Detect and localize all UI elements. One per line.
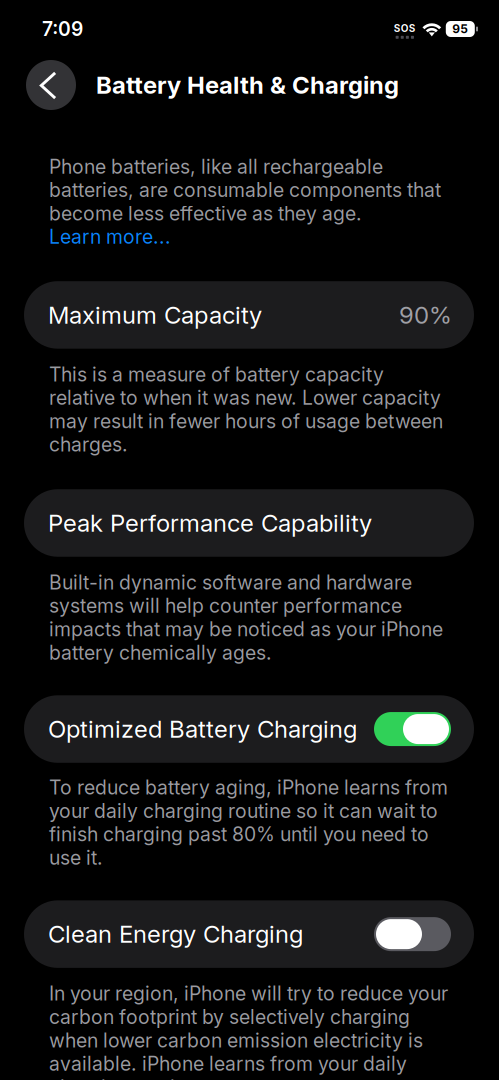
staticText: 90%: [399, 300, 452, 329]
staticText: 7:09: [42, 17, 83, 41]
staticText: To reduce battery aging, iPhone learns f…: [49, 776, 448, 869]
staticText: In your region, iPhone will try to reduc…: [49, 982, 448, 1080]
staticText: This is a measure of battery capacity re…: [49, 363, 443, 456]
button[interactable]: Back: [26, 60, 76, 110]
button[interactable]: Optimized Battery Charging: [24, 695, 474, 763]
staticText: Learn more...: [49, 225, 171, 248]
button[interactable]: Maximum Capacity: [24, 281, 474, 349]
staticText: Built-in dynamic software and hardware s…: [49, 571, 443, 664]
staticText: SOS: [394, 22, 416, 34]
staticText: Maximum Capacity: [48, 300, 262, 329]
staticText: Optimized Battery Charging: [48, 714, 357, 743]
staticText: Battery Health & Charging: [96, 70, 399, 99]
staticText: 95: [452, 22, 468, 36]
staticText: Phone batteries, like all rechargeable b…: [49, 155, 441, 225]
staticText: Peak Performance Capability: [48, 508, 372, 537]
staticText: Clean Energy Charging: [48, 920, 303, 949]
button[interactable]: Clean Energy Charging: [24, 900, 474, 968]
button[interactable]: Learn more...: [49, 225, 171, 248]
button[interactable]: Peak Performance Capability: [24, 489, 474, 557]
